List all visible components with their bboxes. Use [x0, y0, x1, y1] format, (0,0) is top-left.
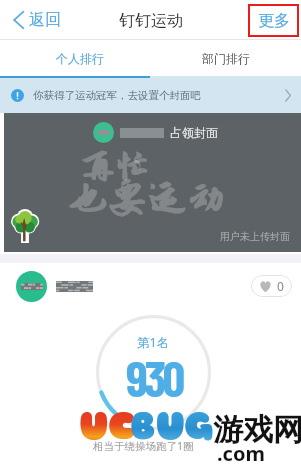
staticText: 第1名 [137, 334, 170, 351]
staticText: 占领封面 [170, 125, 218, 140]
staticText: UC [79, 403, 135, 450]
staticText: 更多 [258, 11, 290, 31]
staticText: 游戏网 [213, 411, 301, 449]
staticText: 0 [277, 278, 284, 294]
staticText: 也要运动 [68, 176, 227, 220]
staticText: BUG [130, 403, 214, 450]
staticText: .com [217, 440, 265, 467]
button[interactable]: 占领封面 [93, 122, 218, 143]
staticText: 钉钉运动 [119, 11, 183, 31]
button[interactable]: 0 [0, 263, 301, 309]
button[interactable]: 个人排行 [0, 40, 150, 76]
button[interactable]: 你获得了运动冠军，去设置个封面吧 [0, 78, 301, 113]
staticText: 930 [126, 347, 182, 407]
staticText: 返回 [29, 10, 61, 30]
button[interactable]: 0 [251, 275, 292, 297]
staticText: 相当于绕操场跑了1圈 [93, 439, 194, 453]
staticText: 你获得了运动冠军，去设置个封面吧 [33, 89, 201, 102]
staticText: 个人排行 [56, 51, 104, 66]
button[interactable]: 部门排行 [150, 40, 301, 76]
staticText: 再忙 [81, 148, 150, 186]
button[interactable]: 返回 [10, 7, 64, 33]
staticText: 用户未上传封面 [220, 230, 290, 243]
button[interactable]: 更多 [248, 4, 299, 37]
staticText: 部门排行 [202, 51, 250, 66]
